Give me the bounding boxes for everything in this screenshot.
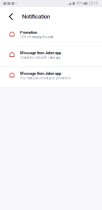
button[interactable]: Promotion [0,26,102,46]
staticText: Message from Jaber app [20,71,61,76]
button[interactable]: Message from Jaber app [0,67,102,87]
staticText: Notification [22,13,50,20]
staticText: You have just unlock your promotion [20,77,71,80]
button[interactable]: Message from Jaber app [0,46,102,66]
button[interactable]: Back [4,8,18,25]
staticText: Message from Jaber app [20,51,61,55]
staticText: 10% off everyday this week [20,36,53,39]
staticText: Promotion [20,30,37,35]
staticText: 40% [76,2,82,5]
staticText: Thanks for ride with Jaber app [20,56,61,59]
staticText: 23:10 [89,2,98,5]
